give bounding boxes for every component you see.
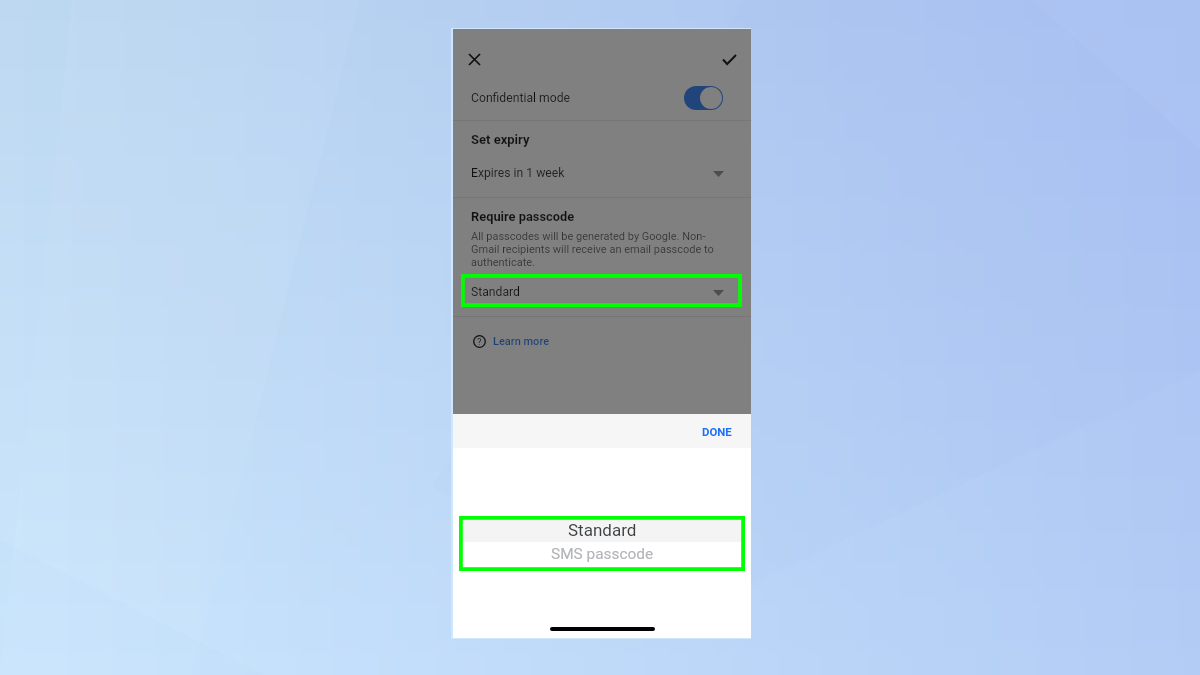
button[interactable]: SMS passcode [461,543,744,569]
button[interactable]: Standard [453,279,751,307]
staticText: Standard [568,520,637,540]
button[interactable]: Save [715,45,743,73]
staticText: Require passcode [471,209,575,224]
button[interactable]: ? [467,330,559,354]
button[interactable]: Expires in 1 week [453,160,751,188]
staticText: Expires in 1 week [471,166,565,180]
button[interactable]: Standard [461,520,744,542]
button[interactable]: Confidential mode [453,76,751,120]
button[interactable]: DONE [693,417,741,444]
staticText: ? [477,336,482,347]
button[interactable]: Confidential mode [684,86,723,110]
staticText: SMS passcode [551,545,654,563]
staticText: Standard [471,285,520,299]
staticText: Set expiry [471,132,530,147]
staticText: DONE [702,425,732,438]
staticText: All passcodes will be generated by Googl… [471,230,714,269]
button[interactable]: Close [460,45,488,73]
staticText: Confidential mode [471,91,570,105]
staticText: Learn more [493,335,550,348]
